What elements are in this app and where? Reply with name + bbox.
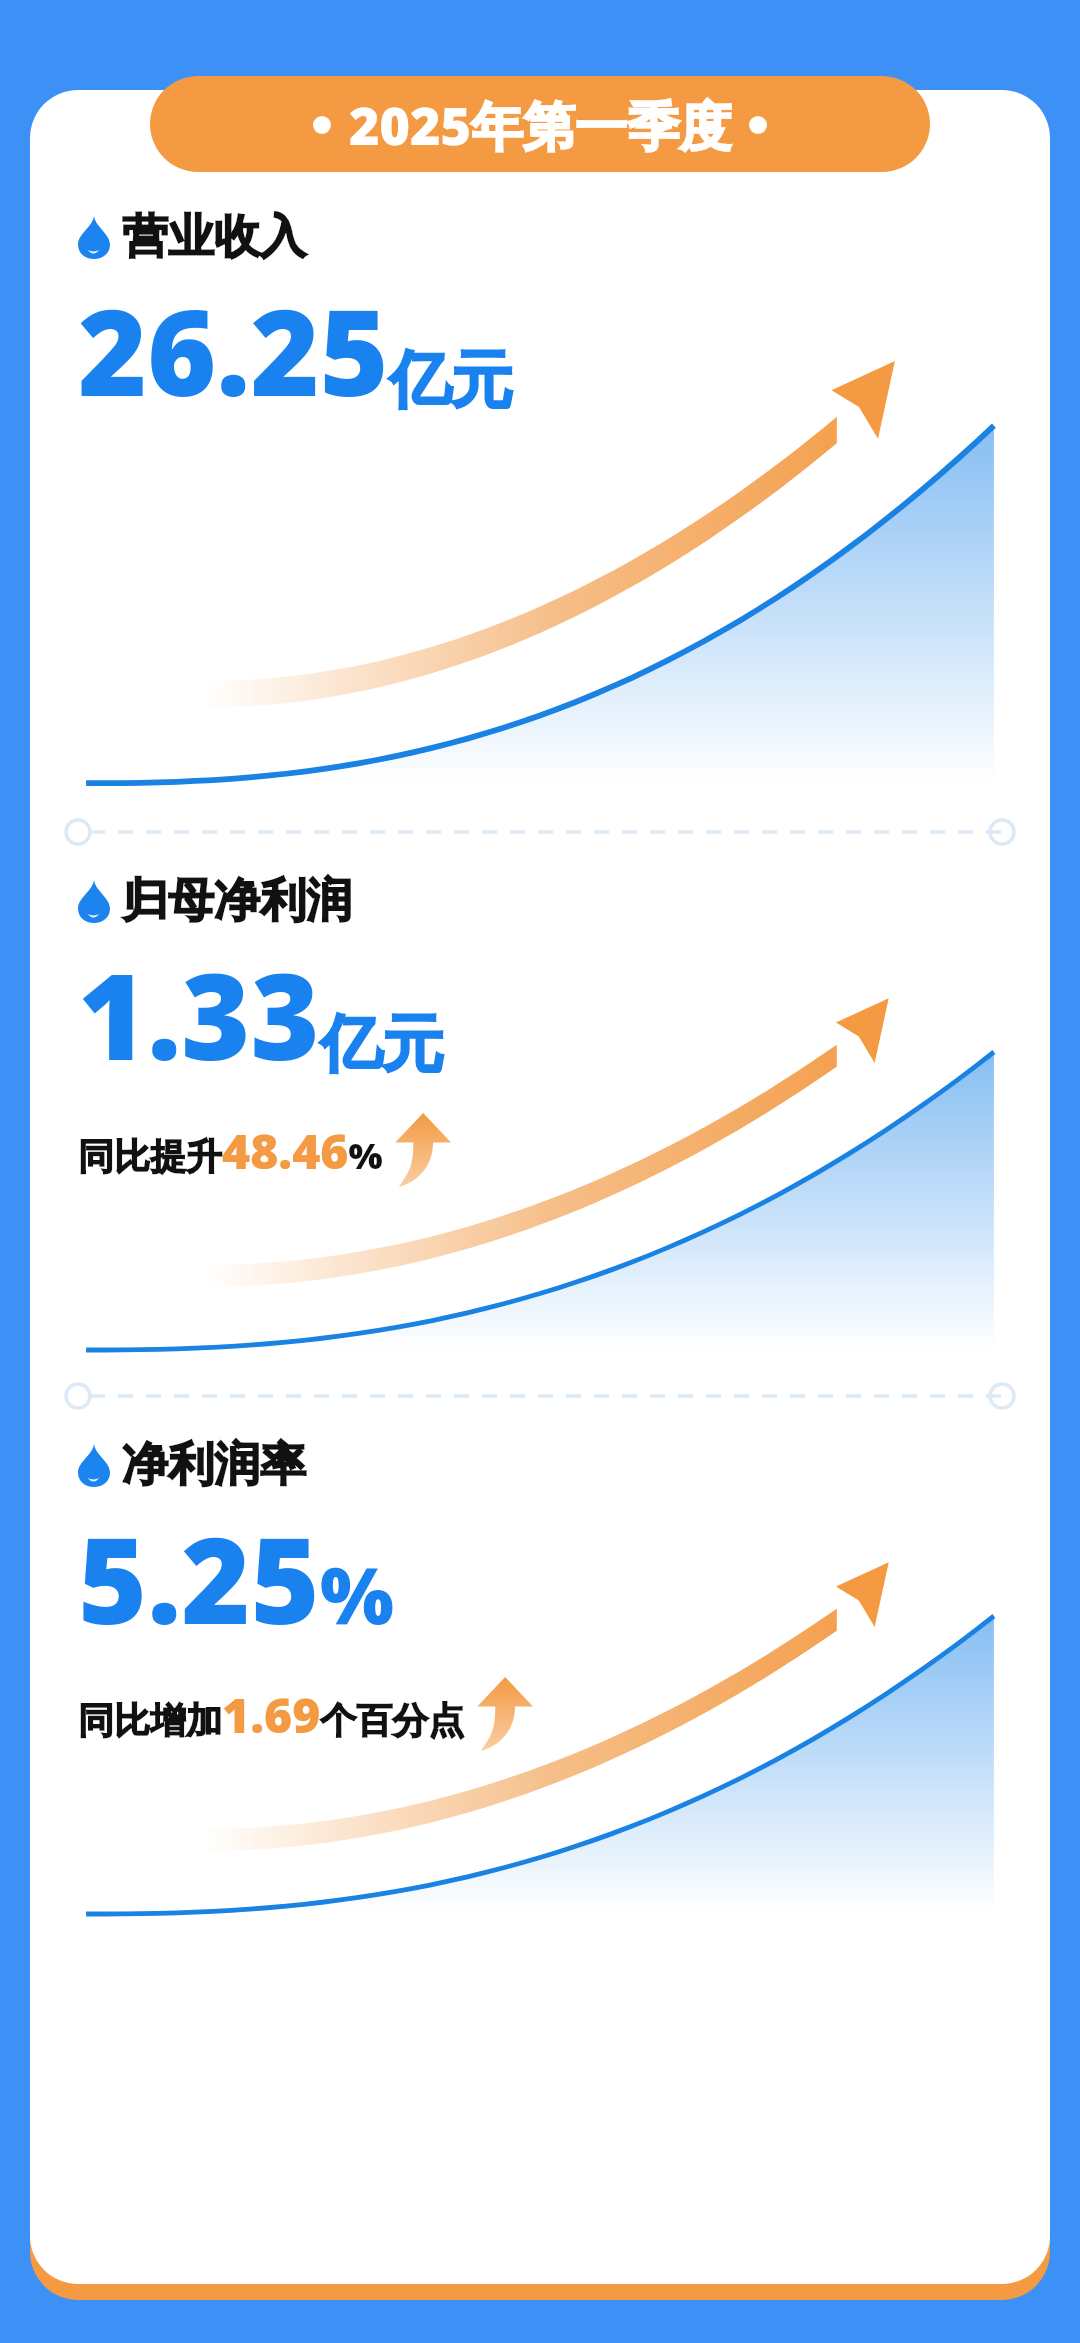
staticText: 亿元 [320, 1005, 444, 1083]
staticText: 亿元 [389, 341, 513, 419]
staticText: 2025年第一季度 [349, 89, 731, 160]
staticText: 同比增加1.69个百分点 [78, 1682, 465, 1747]
button[interactable]: 2025年第一季度 [150, 76, 930, 172]
other: Metric [78, 879, 110, 923]
staticText: 同比提升48.46% [78, 1118, 383, 1183]
staticText: 归母净利润 [122, 872, 352, 930]
staticText: 营业收入 [122, 208, 306, 266]
staticText: 26.25 [78, 270, 389, 431]
staticText: 净利润率 [122, 1436, 306, 1494]
other: Metric [78, 215, 110, 259]
staticText: 5.25 [78, 1498, 320, 1659]
staticText: 1.33 [78, 934, 320, 1095]
other: Metric [78, 1443, 110, 1487]
staticText: % [320, 1541, 394, 1647]
